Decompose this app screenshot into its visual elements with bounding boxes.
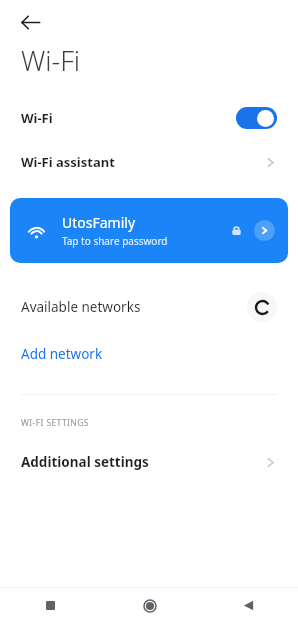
- button[interactable]: Back: [10, 2, 50, 42]
- staticText: Wi-Fi: [21, 42, 81, 79]
- staticText: WI-FI SETTINGS: [21, 417, 89, 429]
- button[interactable]: Back: [199, 588, 298, 623]
- button[interactable]: UtosFamily: [10, 198, 288, 263]
- staticText: Tap to share password: [62, 234, 168, 248]
- button[interactable]: Wi-Fi assistant: [0, 143, 298, 181]
- staticText: Wi-Fi: [21, 109, 53, 127]
- staticText: Wi-Fi assistant: [21, 153, 115, 171]
- button[interactable]: Refresh: [247, 292, 277, 322]
- button[interactable]: Additional settings: [0, 446, 298, 478]
- staticText: Available networks: [21, 298, 141, 316]
- button[interactable]: Network details: [254, 220, 275, 241]
- button[interactable]: Recents: [0, 588, 100, 623]
- button[interactable]: Home: [100, 588, 199, 623]
- staticText: Add network: [21, 345, 103, 363]
- staticText: Additional settings: [21, 453, 149, 471]
- button[interactable]: Wi-Fi: [0, 99, 298, 137]
- staticText: UtosFamily: [62, 213, 136, 232]
- button[interactable]: Add network: [0, 340, 298, 368]
